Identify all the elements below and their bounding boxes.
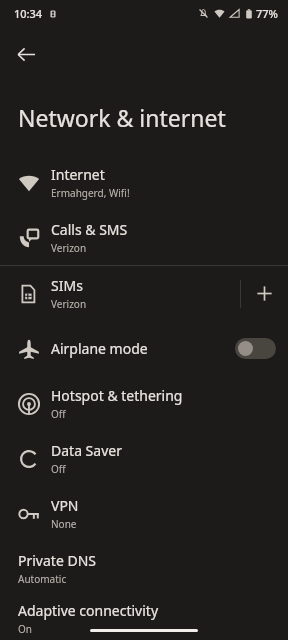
button[interactable]: Add SIM [241, 266, 288, 321]
button[interactable]: Private DNS [0, 541, 288, 596]
staticText: Verizon [51, 297, 87, 311]
button[interactable]: Internet [0, 155, 288, 210]
staticText: Automatic [18, 572, 67, 586]
staticText: Calls & SMS [51, 220, 128, 239]
button[interactable]: VPN [0, 486, 288, 541]
button[interactable]: Calls & SMS [0, 210, 288, 265]
staticText: None [51, 517, 77, 531]
staticText: SIMs [51, 276, 83, 295]
staticText: Data Saver [51, 441, 122, 460]
staticText: VPN [51, 496, 79, 515]
staticText: Off [51, 462, 66, 476]
staticText: 10:34 [14, 6, 43, 21]
staticText: Off [51, 407, 66, 421]
staticText: Hotspot & tethering [51, 386, 183, 405]
staticText: Ermahgerd, Wifi! [51, 186, 130, 200]
staticText: 77% [256, 6, 278, 21]
button[interactable]: SIMs [0, 266, 240, 321]
staticText: Airplane mode [51, 339, 148, 358]
button[interactable]: Airplane mode [0, 321, 288, 376]
staticText: Adaptive connectivity [18, 601, 159, 620]
staticText: Network & internet [18, 102, 226, 133]
staticText: On [18, 622, 32, 636]
button[interactable]: Back [4, 32, 48, 76]
button[interactable]: Data Saver [0, 431, 288, 486]
button[interactable]: Adaptive connectivity [0, 596, 288, 640]
button[interactable]: Hotspot & tethering [0, 376, 288, 431]
staticText: Private DNS [18, 551, 96, 570]
staticText: Internet [51, 165, 105, 184]
staticText: Verizon [51, 241, 87, 255]
button[interactable]: Airplane mode toggle [235, 338, 276, 359]
